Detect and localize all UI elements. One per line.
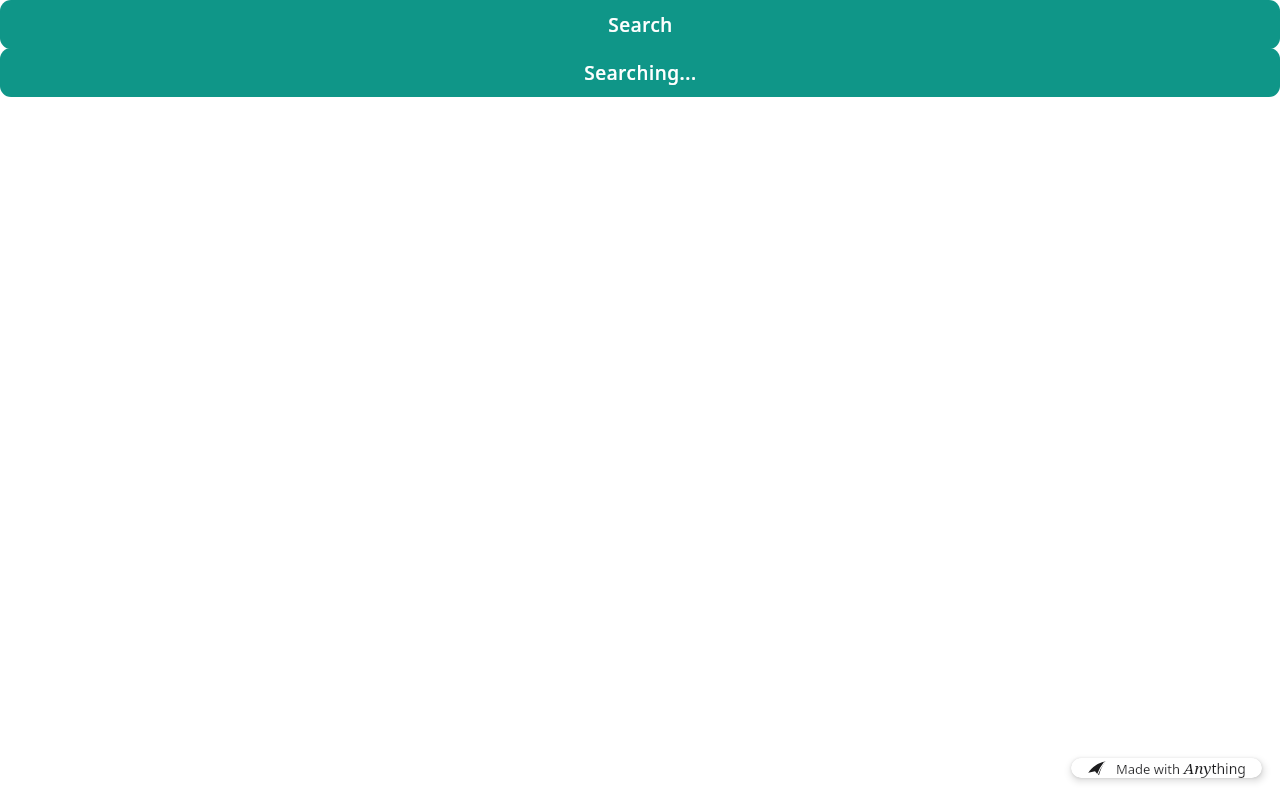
other: Anything logo xyxy=(1087,758,1107,778)
staticText: Search xyxy=(608,12,673,38)
staticText: Searching... xyxy=(584,60,697,86)
button[interactable]: Searching... xyxy=(0,48,1280,97)
staticText: Made with Anything xyxy=(1116,758,1246,778)
button[interactable]: Anything logo xyxy=(1071,758,1262,778)
button[interactable]: Search xyxy=(0,0,1280,49)
